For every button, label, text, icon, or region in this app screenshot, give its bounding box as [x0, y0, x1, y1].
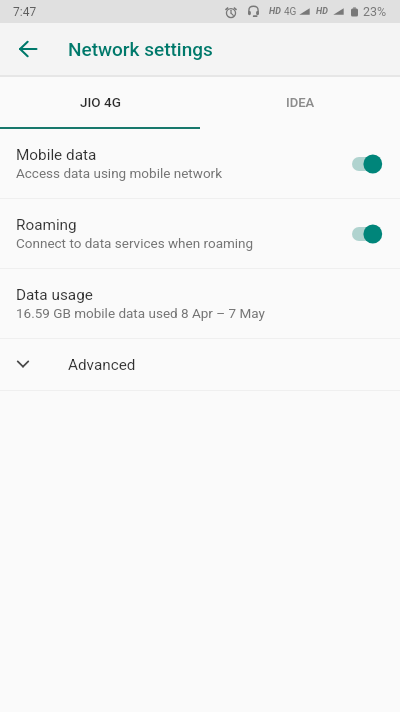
- staticText: HD: [269, 6, 281, 17]
- button[interactable]: Data usage: [0, 269, 400, 338]
- staticText: HD: [316, 6, 328, 17]
- staticText: 7:47: [13, 5, 37, 19]
- staticText: Mobile data: [16, 146, 97, 164]
- button[interactable]: Mobile data: [0, 129, 400, 198]
- staticText: Advanced: [68, 356, 136, 374]
- staticText: Connect to data services when roaming: [16, 235, 254, 251]
- button[interactable]: [351, 152, 385, 176]
- staticText: JIO 4G: [80, 94, 121, 110]
- button[interactable]: Roaming: [0, 199, 400, 268]
- staticText: Access data using mobile network: [16, 165, 223, 181]
- button[interactable]: [351, 222, 385, 246]
- button[interactable]: Back: [8, 29, 48, 69]
- staticText: Network settings: [68, 38, 213, 60]
- staticText: Roaming: [16, 216, 77, 234]
- staticText: Data usage: [16, 286, 93, 304]
- button[interactable]: IDEA: [200, 77, 400, 127]
- staticText: IDEA: [286, 95, 315, 110]
- staticText: 16.59 GB mobile data used 8 Apr – 7 May: [16, 305, 265, 321]
- staticText: 23%: [363, 4, 387, 19]
- button[interactable]: Advanced: [0, 339, 400, 390]
- staticText: 4G: [284, 6, 297, 18]
- button[interactable]: JIO 4G: [0, 77, 200, 127]
